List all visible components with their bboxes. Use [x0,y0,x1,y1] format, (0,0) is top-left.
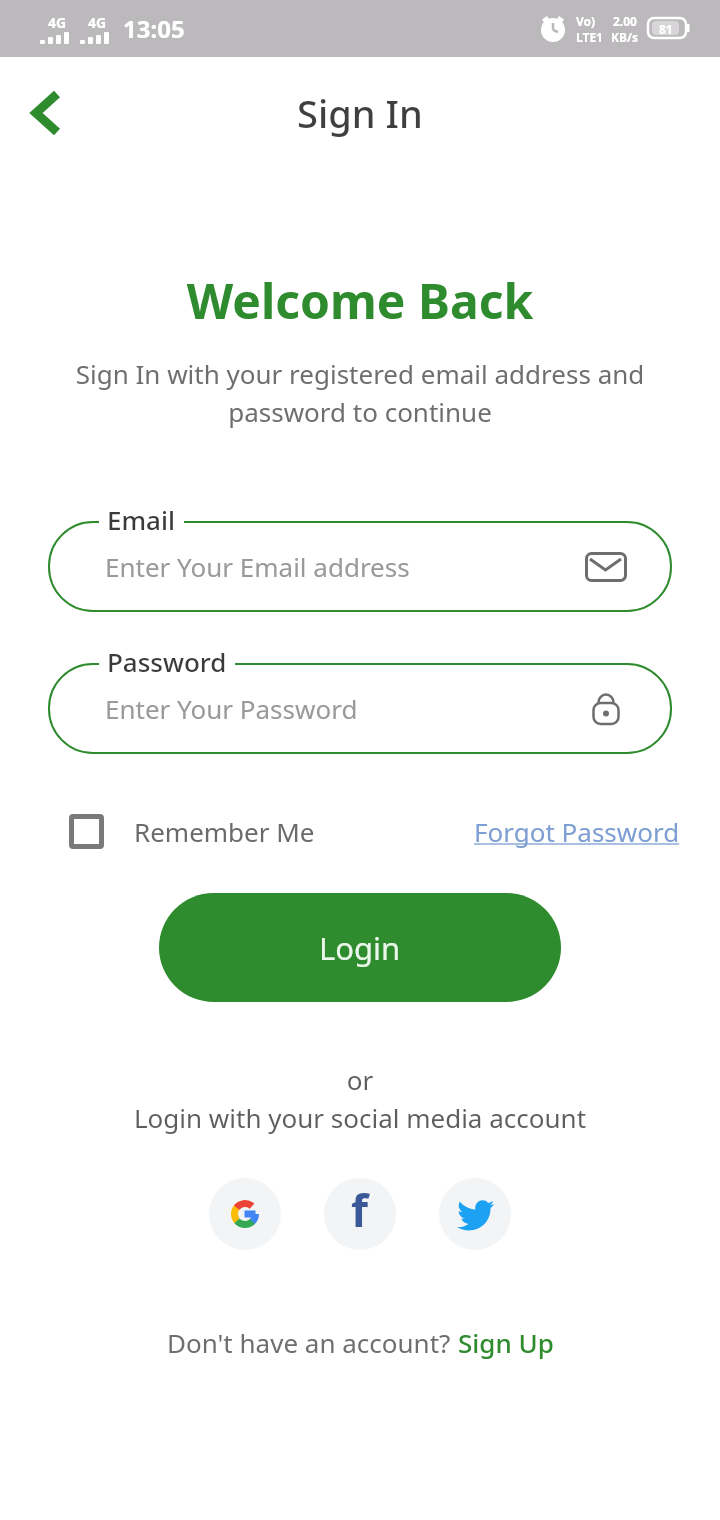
staticText: 81 [659,21,673,37]
staticText: f [351,1180,369,1240]
staticText: KB/s [611,29,638,45]
button[interactable]: Forgot Password [474,814,680,849]
staticText: Vo) [576,13,596,29]
staticText: Don't have an account? [167,1325,458,1360]
staticText: Sign Up [458,1325,554,1360]
staticText: Forgot Password [474,814,680,849]
staticText: Email [107,502,176,532]
staticText: Sign In with your registered email addre… [0,356,720,429]
staticText: 13:05 [123,12,185,45]
button[interactable]: Remember Me [69,814,315,849]
staticText: 2.00 [613,13,637,29]
staticText: Sign In [297,87,423,139]
staticText: 4G [88,13,107,32]
button[interactable]: Sign Up [458,1325,554,1360]
staticText: or Login with your social media account [0,1062,720,1135]
button[interactable]: f [324,1178,396,1250]
staticText: 4G [48,13,67,32]
button[interactable]: Enter Your Password [48,663,672,754]
button[interactable]: Enter Your Email address [48,521,672,612]
staticText: LTE1 [576,29,603,45]
staticText: Login [319,927,401,969]
button[interactable]: Login [159,893,561,1002]
staticText: Password [107,644,227,674]
staticText: Welcome Back [0,268,720,333]
button[interactable] [439,1178,511,1250]
staticText: Enter Your Password [105,691,358,726]
button[interactable] [209,1178,281,1250]
staticText: Enter Your Email address [105,549,410,584]
button[interactable] [24,91,68,135]
staticText: Remember Me [134,814,315,849]
